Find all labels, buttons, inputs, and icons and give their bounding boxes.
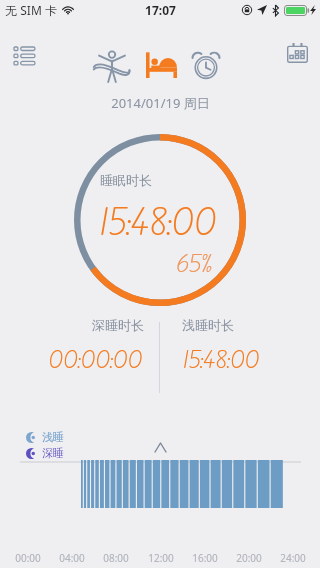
staticText: 20:00 [236, 551, 262, 565]
staticText: 04:00 [59, 551, 85, 565]
button[interactable]: Calendar [283, 39, 311, 67]
button[interactable]: Sleep [141, 47, 181, 81]
staticText: 08:00 [103, 551, 129, 565]
staticText: 15:48:00 [182, 344, 259, 377]
button[interactable]: 浅睡时长 [160, 312, 320, 380]
button[interactable]: Alarm [190, 50, 222, 80]
staticText: 12:00 [148, 551, 174, 565]
button[interactable]: 浅睡 [26, 430, 64, 444]
button[interactable]: Records list [6, 38, 42, 74]
staticText: 无 SIM 卡 [5, 2, 57, 18]
button[interactable]: Activity [90, 46, 134, 84]
staticText: 17:07 [145, 2, 176, 18]
staticText: 深睡 [42, 446, 64, 460]
staticText: 睡眠时长 [100, 172, 152, 188]
staticText: 65% [175, 246, 212, 281]
staticText: 00:00 [15, 551, 41, 565]
button[interactable]: 深睡时长 [0, 312, 160, 380]
staticText: 16:00 [192, 551, 218, 565]
staticText: 00:00:00 [48, 344, 142, 377]
button[interactable]: 深睡 [26, 446, 64, 460]
staticText: 浅睡 [42, 430, 64, 444]
staticText: 浅睡时长 [182, 317, 234, 333]
staticText: 15:48:00 [98, 198, 216, 248]
staticText: 2014/01/19 周日 [111, 94, 210, 112]
staticText: 24:00 [280, 551, 306, 565]
staticText: 深睡时长 [92, 317, 144, 333]
